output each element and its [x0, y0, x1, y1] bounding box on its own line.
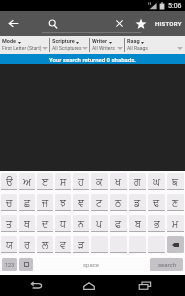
button[interactable]: 123	[2, 258, 17, 271]
staticText: ਚ	[6, 198, 13, 207]
button[interactable]: Back	[11, 275, 61, 296]
button[interactable]: ੜ	[73, 236, 89, 252]
button[interactable]: ਪ	[91, 215, 108, 231]
button[interactable]: space	[35, 258, 148, 271]
button[interactable]: ਲ	[37, 236, 53, 252]
button[interactable]: Clear query	[110, 11, 129, 36]
button[interactable]: ਗ	[129, 173, 146, 189]
staticText: ਵ	[60, 240, 66, 249]
staticText: ਠ	[115, 198, 122, 207]
button[interactable]: Scripture	[50, 36, 89, 54]
button[interactable]: ਧ	[55, 215, 71, 231]
button[interactable]: Back	[0, 11, 26, 36]
button[interactable]: ਙ	[167, 173, 184, 189]
staticText: ੳ	[6, 177, 13, 186]
button[interactable]: ਬ	[129, 215, 146, 231]
staticText: ੜ	[78, 240, 85, 249]
staticText: ਬ	[135, 219, 141, 228]
staticText: HISTORY	[155, 20, 182, 27]
button[interactable]: ਕ	[91, 173, 108, 189]
button[interactable]: ਰ	[19, 236, 35, 252]
staticText: 123	[5, 262, 15, 268]
button[interactable]: ਡ	[129, 194, 146, 210]
button[interactable]: ਮ	[167, 215, 184, 231]
staticText: ਫ	[115, 219, 122, 228]
button[interactable]: Search	[42, 11, 64, 36]
button[interactable]: ਘ	[148, 173, 165, 189]
staticText: ਹ	[78, 177, 84, 186]
staticText: 5:06	[168, 2, 182, 10]
button[interactable]: Favourites	[129, 11, 152, 36]
button[interactable]: ਖ	[110, 173, 127, 189]
staticText: ਝ	[60, 198, 66, 207]
staticText: ਟ	[96, 198, 103, 207]
button[interactable]: ਸ	[55, 173, 71, 189]
staticText: All Writers	[92, 45, 115, 51]
button[interactable]: ਨ	[73, 215, 89, 231]
button[interactable]: search	[150, 258, 183, 271]
button[interactable]: ਭ	[148, 215, 165, 231]
button[interactable]: Raag	[125, 36, 184, 54]
staticText: ਖ	[115, 177, 122, 186]
staticText: ੲ	[42, 177, 49, 186]
staticText: ਦ	[42, 219, 49, 228]
button[interactable]: ਣ	[167, 194, 184, 210]
staticText: All Scriptures	[52, 45, 82, 51]
button[interactable]: ੲ	[37, 173, 53, 189]
button[interactable]: ਜ	[37, 194, 53, 210]
button[interactable]: Writer	[90, 36, 124, 54]
staticText: ਛ	[24, 198, 31, 207]
staticText: ਘ	[153, 177, 161, 186]
button[interactable]: Emoji	[19, 258, 33, 271]
staticText: Your search returned 0 shabads.	[49, 56, 136, 63]
staticText: ਗ	[134, 177, 141, 186]
button[interactable]: ਤ	[1, 215, 17, 231]
button[interactable]: ਹ	[73, 173, 89, 189]
staticText: ਙ	[172, 177, 179, 186]
staticText: ਮ	[172, 219, 179, 228]
staticText: ਞ	[78, 198, 85, 207]
button[interactable]: Mode	[0, 36, 49, 54]
staticText: ਰ	[24, 240, 30, 249]
staticText: Scripture	[52, 38, 75, 44]
staticText: ਡ	[134, 198, 141, 207]
staticText: ਪ	[96, 219, 103, 228]
button[interactable]: ਝ	[55, 194, 71, 210]
button[interactable]: ਠ	[110, 194, 127, 210]
button[interactable]: ਛ	[19, 194, 35, 210]
button[interactable]: HISTORY	[152, 11, 185, 36]
button[interactable]: Home	[61, 275, 117, 296]
button[interactable]: ਞ	[73, 194, 89, 210]
button[interactable]: Recent apps	[117, 275, 172, 296]
staticText: First Letter (Start)	[2, 45, 42, 51]
staticText: ਥ	[24, 219, 31, 228]
staticText: ਯ	[6, 240, 13, 249]
staticText: ਅ	[23, 177, 32, 186]
button[interactable]: ਅ	[19, 173, 35, 189]
button[interactable]: ੳ	[1, 173, 17, 189]
staticText: ਤ	[6, 219, 13, 228]
staticText: ਲ	[42, 240, 49, 249]
staticText: ਧ	[60, 219, 66, 228]
staticText: ਨ	[78, 219, 84, 228]
button[interactable]: ਚ	[1, 194, 17, 210]
button[interactable]: ਦ	[37, 215, 53, 231]
button[interactable]: ਢ	[148, 194, 165, 210]
staticText: ਢ	[153, 198, 160, 207]
button[interactable]: ਟ	[91, 194, 108, 210]
staticText: ਭ	[154, 219, 160, 228]
staticText: space	[83, 261, 100, 268]
staticText: ਜ	[42, 198, 49, 207]
button[interactable]: ਵ	[55, 236, 71, 252]
button[interactable]: Backspace	[167, 236, 184, 253]
staticText: search	[158, 261, 176, 268]
staticText: ਣ	[172, 198, 179, 207]
button[interactable]: ਯ	[1, 236, 17, 252]
button[interactable]: ਫ	[110, 215, 127, 231]
button[interactable]: ਥ	[19, 215, 35, 231]
staticText: ਕ	[96, 177, 103, 186]
